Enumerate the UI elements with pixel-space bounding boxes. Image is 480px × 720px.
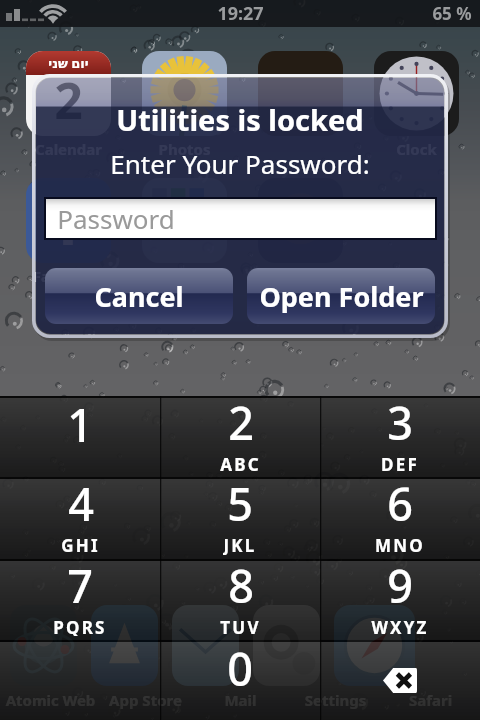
staticText: Safari [365,690,480,710]
staticText: TUV [220,616,261,636]
staticText: MNO [375,534,425,555]
button[interactable]: 9 [320,559,480,640]
button[interactable]: 1 [0,396,160,477]
staticText: PQRS [53,616,107,636]
button[interactable]: 6 [320,477,480,559]
staticText: 2 [228,392,254,453]
staticText: Clock [374,139,459,159]
staticText: Enter Your Password: [36,146,444,181]
staticText: 19:27 [217,1,264,26]
button[interactable]: 2 [160,396,320,477]
staticText: 6 [387,473,413,534]
staticText: 2 [54,66,83,134]
staticText: 3 [387,392,413,453]
staticText: 5 [227,473,253,534]
staticText: Mail [175,690,306,710]
staticText: 4 [68,473,94,534]
staticText: DEF [381,453,419,473]
staticText: Settings [270,690,401,710]
button[interactable]: 3 [320,396,480,477]
staticText: Photos [142,139,227,159]
staticText: App Store [80,690,211,710]
button[interactable]: Password [46,199,435,238]
staticText: 65 % [432,2,472,25]
button[interactable] [0,640,160,720]
button[interactable]: 0 [160,640,320,720]
staticText: Tweetbot [258,266,343,286]
staticText: JKL [223,534,257,555]
staticText: יום שני [48,54,89,72]
button[interactable]: 7 [0,559,160,640]
staticText: 9 [387,555,413,616]
staticText: Password [57,201,175,236]
staticText: 7 [67,555,93,616]
staticText: Atomic Web [0,690,116,710]
staticText: f [57,179,81,263]
staticText: WXYZ [371,616,429,636]
staticText: GHI [61,534,100,555]
staticText: 0 [227,638,253,699]
staticText: Utilities [142,266,227,286]
button[interactable]: Open Folder [247,268,435,324]
staticText: 8 [228,555,254,616]
staticText: Utilities is locked [36,100,444,139]
staticText: Cancel [94,278,184,315]
staticText: Calendar [26,139,111,159]
button[interactable]: 5 [160,477,320,559]
staticText: ABC [220,453,261,473]
staticText: Open Folder [259,278,424,315]
staticText: Facebook [26,266,111,286]
button[interactable]: Backspace [320,640,480,720]
button[interactable]: Cancel [45,268,233,324]
button[interactable]: 4 [0,477,160,559]
staticText: 1 [67,394,93,455]
button[interactable]: 8 [160,559,320,640]
